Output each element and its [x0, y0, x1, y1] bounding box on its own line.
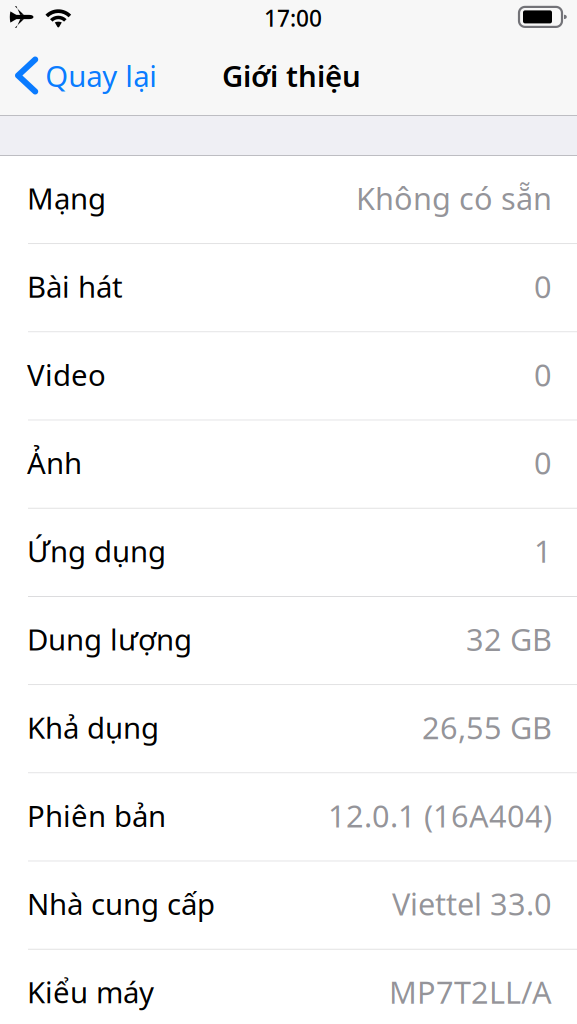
button[interactable]: Video: [0, 332, 577, 421]
staticText: Phiên bản: [27, 796, 166, 835]
staticText: MP7T2LL/A: [389, 971, 552, 1012]
staticText: 1: [534, 530, 552, 571]
button[interactable]: Mạng: [0, 156, 577, 244]
staticText: Giới thiệu: [222, 56, 361, 95]
button[interactable]: Ứng dụng: [0, 509, 577, 597]
staticText: Khả dụng: [27, 708, 159, 747]
staticText: Không có sẵn: [356, 178, 552, 218]
staticText: 0: [534, 266, 552, 307]
button[interactable]: Bài hát: [0, 244, 577, 332]
button[interactable]: Kiểu máy: [0, 950, 577, 1024]
button[interactable]: Phiên bản: [0, 773, 577, 862]
staticText: 26,55 GB: [422, 707, 552, 748]
staticText: Video: [27, 355, 106, 394]
button[interactable]: Dung lượng: [0, 597, 577, 685]
staticText: Viettel 33.0: [392, 883, 552, 924]
button[interactable]: Quay lại: [0, 36, 169, 115]
button[interactable]: Nhà cung cấp: [0, 862, 577, 950]
staticText: Bài hát: [27, 267, 123, 306]
staticText: Dung lượng: [27, 620, 192, 659]
staticText: 32 GB: [466, 619, 552, 659]
staticText: Quay lại: [45, 56, 157, 95]
staticText: Ảnh: [27, 443, 82, 482]
staticText: 0: [534, 442, 552, 483]
button[interactable]: Ảnh: [0, 421, 577, 509]
staticText: Mạng: [27, 179, 106, 218]
staticText: Nhà cung cấp: [27, 884, 215, 923]
staticText: 0: [534, 354, 552, 395]
staticText: Ứng dụng: [27, 531, 166, 570]
staticText: 12.0.1 (16A404): [328, 795, 552, 836]
staticText: Kiểu máy: [27, 972, 154, 1011]
button[interactable]: Khả dụng: [0, 685, 577, 773]
staticText: 17:00: [264, 3, 322, 33]
